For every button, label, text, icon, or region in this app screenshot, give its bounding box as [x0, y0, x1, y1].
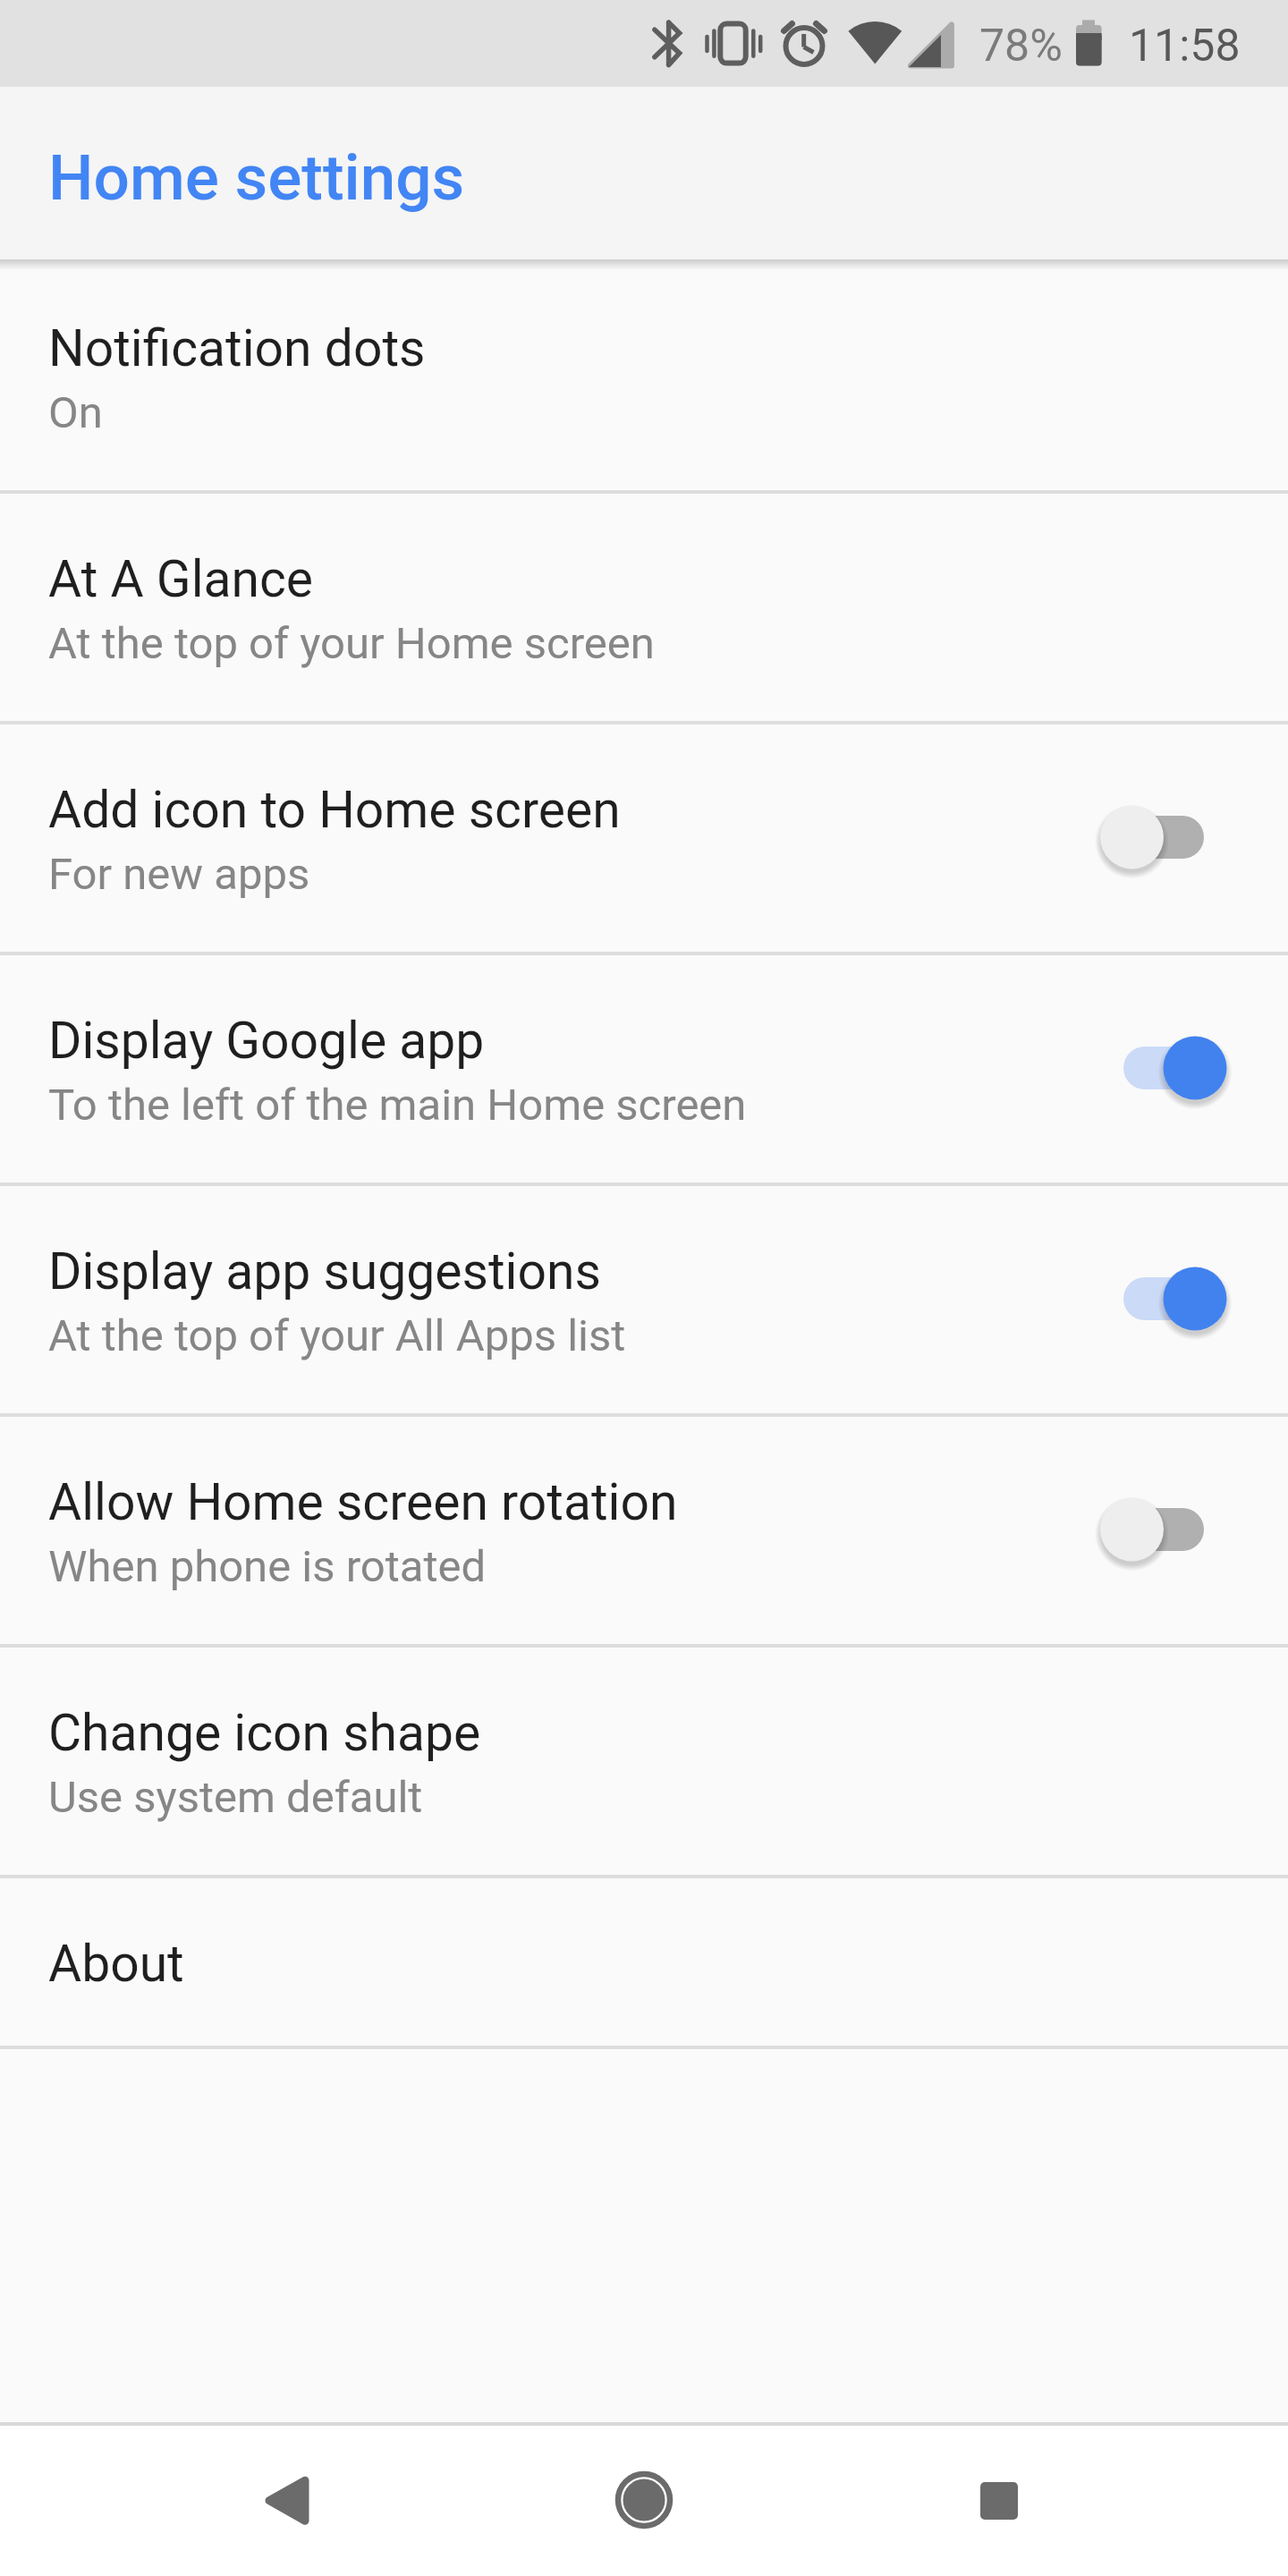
staticText: Display app suggestions [48, 1241, 601, 1301]
staticText: At the top of your Home screen [48, 618, 655, 669]
staticText: Allow Home screen rotation [48, 1472, 678, 1532]
staticText: To the left of the main Home screen [48, 1080, 747, 1131]
staticText: Home settings [48, 140, 465, 215]
staticText: Use system default [48, 1772, 423, 1823]
staticText: At A Glance [48, 549, 314, 609]
button[interactable]: Allow Home screen rotation [0, 1417, 1288, 1648]
staticText: About [48, 1934, 184, 1994]
button[interactable] [251, 2465, 323, 2537]
button[interactable]: Change icon shape [0, 1648, 1288, 1878]
button[interactable]: About [0, 1878, 1288, 2049]
button[interactable]: Notification dots [0, 263, 1288, 494]
staticText: Add icon to Home screen [48, 780, 621, 840]
staticText: At the top of your All Apps list [48, 1310, 626, 1361]
staticText: Change icon shape [48, 1703, 481, 1763]
button[interactable]: Add icon to Home screen [0, 724, 1288, 955]
button[interactable] [963, 2465, 1035, 2537]
staticText: Notification dots [48, 318, 426, 378]
button[interactable] [608, 2464, 680, 2536]
button[interactable]: Display app suggestions [0, 1186, 1288, 1417]
staticText: When phone is rotated [48, 1541, 487, 1592]
staticText: For new apps [48, 849, 310, 900]
button[interactable]: At A Glance [0, 494, 1288, 724]
staticText: 11:58 [1129, 20, 1241, 72]
button[interactable]: Display Google app [0, 955, 1288, 1186]
staticText: Display Google app [48, 1011, 485, 1071]
staticText: On [48, 387, 103, 438]
staticText: 78% [979, 20, 1063, 72]
